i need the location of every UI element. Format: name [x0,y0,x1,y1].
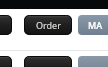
staticText: Order [36,19,61,31]
button[interactable]: Previous [0,56,12,67]
button[interactable]: Order [24,15,72,35]
button[interactable]: MA [78,15,108,35]
staticText: MA [88,19,103,31]
button[interactable]: Item [78,56,108,67]
button[interactable]: Item [24,56,72,67]
button[interactable]: Previous [0,15,12,35]
